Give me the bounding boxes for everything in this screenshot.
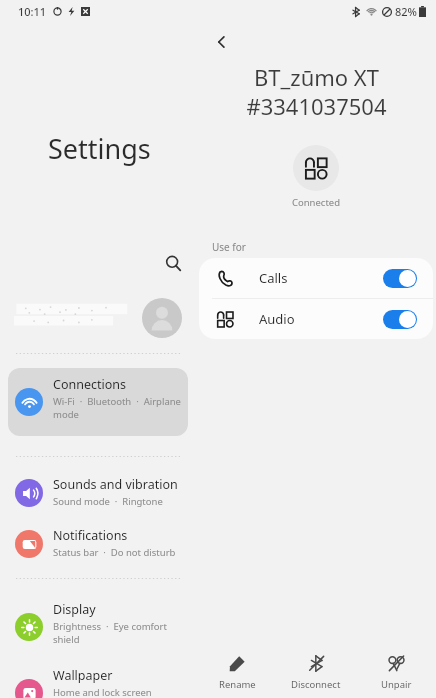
staticText: Brightness · Eye comfort shield [53, 620, 167, 646]
staticText: Disconnect [291, 678, 341, 691]
staticText: Connected [292, 196, 341, 209]
button[interactable] [0, 292, 196, 344]
button[interactable]: Disconnect [277, 648, 355, 698]
button[interactable]: Audio [199, 299, 433, 339]
staticText: Wi-Fi · Bluetooth · Airplane mode [53, 395, 181, 421]
staticText: Settings [48, 130, 151, 167]
staticText: Home and lock screen wallpaper [53, 686, 152, 698]
button[interactable]: Back [206, 26, 238, 58]
button[interactable]: Connections [8, 368, 188, 436]
staticText: Notifications [53, 527, 128, 544]
staticText: Display [53, 601, 96, 618]
staticText: Sound mode · Ringtone [53, 495, 163, 508]
staticText: 82% [395, 4, 417, 19]
staticText: Wallpaper [53, 667, 113, 684]
staticText: Calls [259, 269, 288, 287]
button[interactable]: Display [8, 593, 188, 661]
staticText: Unpair [381, 678, 412, 691]
button[interactable]: Notifications [8, 519, 188, 569]
button[interactable]: Sounds and vibration [8, 468, 188, 518]
staticText: Audio [259, 310, 295, 328]
staticText: Rename [219, 678, 256, 691]
button[interactable]: Search [160, 250, 186, 276]
staticText: 10:11 [18, 4, 47, 19]
staticText: Sounds and vibration [53, 476, 178, 493]
staticText: BT_zūmo XT #3341037504 [246, 62, 387, 121]
staticText: Connections [53, 376, 126, 393]
button[interactable]: Unpair [357, 648, 435, 698]
staticText: Status bar · Do not disturb [53, 546, 176, 559]
button[interactable]: Wallpaper [8, 659, 188, 698]
button[interactable]: Calls [199, 258, 433, 298]
staticText: Use for [212, 240, 246, 254]
button[interactable]: Rename [198, 648, 276, 698]
